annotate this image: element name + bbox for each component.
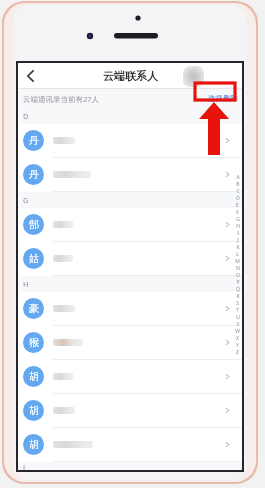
button[interactable]: 豪 — [18, 292, 242, 325]
staticText: G — [23, 195, 29, 205]
staticText: M — [235, 258, 240, 265]
staticText: D — [236, 195, 240, 202]
staticText: J — [23, 462, 26, 470]
staticText: 丹 — [29, 134, 39, 147]
staticText: 云端联系人 — [103, 69, 158, 83]
staticText: S — [236, 300, 239, 307]
button[interactable]: 丹 — [18, 124, 242, 157]
staticText: I — [237, 230, 239, 237]
staticText: 胡 — [29, 370, 39, 383]
staticText: 胡 — [29, 404, 39, 417]
staticText: H — [23, 279, 29, 289]
staticText: E — [236, 202, 239, 209]
staticText: 丹 — [29, 168, 39, 181]
staticText: Q — [236, 286, 240, 293]
staticText: V — [236, 321, 240, 328]
button[interactable]: Profile — [183, 66, 204, 87]
staticText: K — [236, 244, 240, 251]
staticText: A — [236, 174, 240, 181]
staticText: J — [237, 237, 239, 244]
staticText: Y — [236, 342, 239, 349]
staticText: P — [236, 279, 240, 286]
button[interactable]: Back — [18, 63, 44, 89]
button[interactable]: 丹 — [18, 158, 242, 191]
staticText: 云端通讯录当前有27人 — [23, 94, 100, 104]
staticText: X — [236, 335, 239, 342]
staticText: Z — [236, 349, 239, 356]
staticText: U — [236, 314, 240, 321]
button[interactable]: 猴 — [18, 326, 242, 359]
button[interactable]: 姑 — [18, 242, 242, 275]
staticText: 姑 — [29, 252, 39, 265]
button[interactable]: 郜 — [18, 208, 242, 241]
staticText: H — [236, 223, 240, 230]
button[interactable]: 胡 — [18, 428, 242, 461]
staticText: 豪 — [29, 302, 39, 315]
staticText: L — [236, 251, 239, 258]
staticText: 郜 — [29, 218, 39, 231]
staticText: N — [236, 265, 240, 272]
staticText: 选择删除 — [208, 94, 238, 103]
staticText: D — [23, 111, 29, 121]
staticText: C — [236, 188, 240, 195]
staticText: O — [236, 272, 240, 279]
staticText: 胡 — [29, 438, 39, 451]
button[interactable]: 选择删除 — [208, 94, 238, 103]
staticText: F — [236, 209, 239, 216]
button[interactable]: Alphabet index — [234, 174, 241, 356]
button[interactable]: 胡 — [18, 394, 242, 427]
staticText: T — [236, 307, 239, 314]
button[interactable]: 胡 — [18, 360, 242, 393]
staticText: B — [236, 181, 240, 188]
staticText: W — [235, 328, 240, 335]
staticText: 猴 — [29, 336, 39, 349]
staticText: R — [236, 293, 240, 300]
staticText: G — [236, 216, 240, 223]
